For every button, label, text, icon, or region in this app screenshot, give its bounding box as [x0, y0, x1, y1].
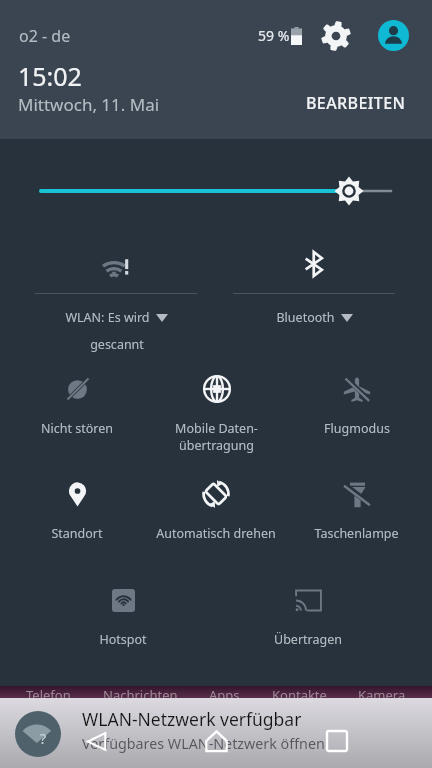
button[interactable]: User account	[378, 20, 409, 51]
button[interactable]: Flugmodus	[287, 373, 427, 469]
staticText: Übertragen	[274, 631, 342, 648]
button[interactable]: Home	[194, 719, 238, 763]
button[interactable]: Nicht stören	[7, 373, 147, 469]
button[interactable]: Hotspot	[53, 584, 193, 680]
staticText: Bluetooth	[276, 309, 335, 326]
button[interactable]: Standort	[7, 478, 147, 574]
button[interactable]: BEARBEITEN	[294, 85, 418, 121]
staticText: Automatisch drehen	[156, 525, 276, 542]
staticText: 59 %	[258, 26, 290, 45]
button[interactable]: Brightness	[0, 169, 432, 213]
staticText: gescannt	[90, 336, 144, 353]
staticText: Taschenlampe	[314, 525, 399, 542]
staticText: o2 - de	[19, 25, 71, 47]
staticText: Mobile Daten-	[175, 420, 258, 437]
staticText: 15:02	[18, 59, 82, 93]
staticText: übertragung	[179, 437, 254, 454]
button[interactable]: Mobile Daten-	[146, 373, 286, 469]
button[interactable]: Back	[74, 719, 118, 763]
button[interactable]: Automatisch drehen	[146, 478, 286, 574]
button[interactable]: Settings	[318, 18, 354, 54]
staticText: BEARBEITEN	[306, 92, 406, 114]
staticText: Standort	[51, 525, 103, 542]
staticText: Flugmodus	[324, 420, 390, 437]
staticText: Nicht stören	[41, 420, 113, 437]
button[interactable]: Taschenlampe	[286, 478, 426, 574]
staticText: Kontakte	[272, 686, 327, 698]
staticText: Kamera	[358, 686, 406, 698]
staticText: Nachrichten	[103, 686, 178, 698]
button[interactable]: Bluetooth	[215, 236, 413, 358]
staticText: Verfügbares WLAN-Netzwerk öffnen	[82, 734, 325, 753]
button[interactable]: WLAN	[17, 236, 215, 358]
staticText: Apps	[209, 686, 240, 698]
staticText: Telefon	[26, 686, 71, 698]
staticText: WLAN-Netzwerk verfügbar	[82, 707, 302, 731]
button[interactable]: Übertragen	[238, 584, 378, 680]
staticText: ?	[40, 729, 47, 748]
staticText: Hotspot	[99, 631, 147, 648]
staticText: Mittwoch, 11. Mai	[18, 93, 160, 116]
staticText: WLAN: Es wird	[65, 309, 150, 326]
button[interactable]: Recent apps	[315, 719, 359, 763]
